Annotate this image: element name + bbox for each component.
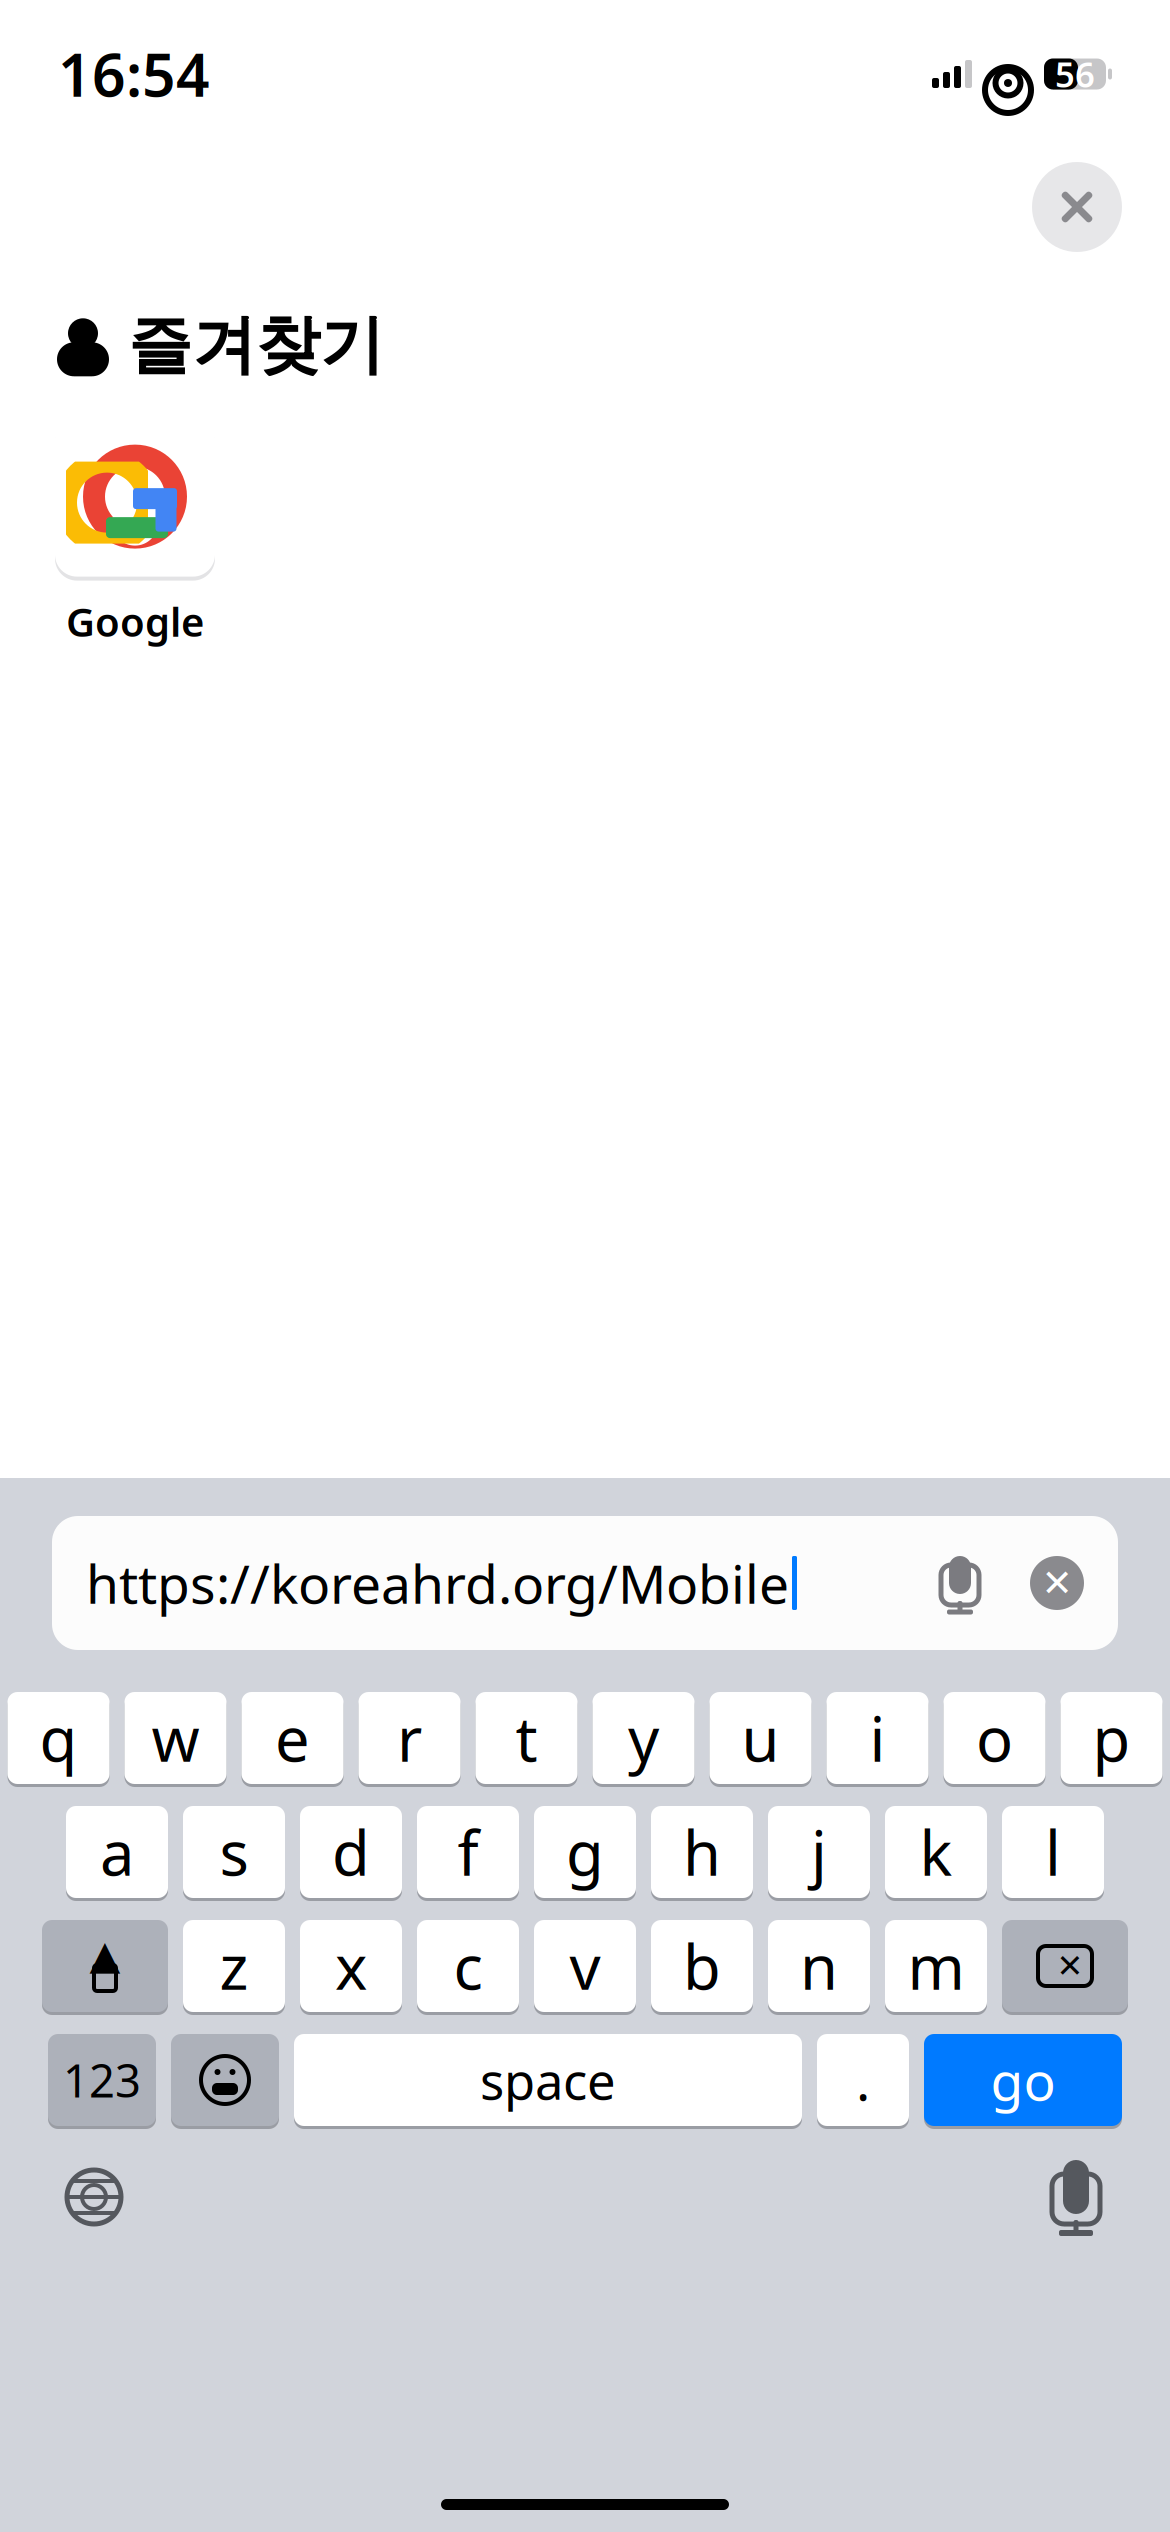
button[interactable]: z [183, 1920, 285, 2012]
staticText: s [219, 1811, 248, 1893]
button[interactable]: d [300, 1806, 402, 1898]
staticText: o [976, 1697, 1013, 1779]
button[interactable]: h [651, 1806, 753, 1898]
staticText: b [683, 1925, 721, 2007]
staticText: p [1092, 1697, 1130, 1779]
staticText: . [856, 2045, 870, 2115]
staticText: Google [66, 595, 204, 648]
staticText: d [332, 1811, 370, 1893]
button[interactable]: y [592, 1692, 694, 1784]
staticText: 123 [63, 2050, 141, 2110]
button[interactable]: b [651, 1920, 753, 2012]
staticText: v [569, 1925, 600, 2007]
staticText: space [480, 2046, 616, 2114]
staticText: h [683, 1811, 721, 1893]
staticText: 56 [1055, 51, 1095, 97]
staticText: go [990, 2045, 1055, 2115]
button[interactable]: u [709, 1692, 811, 1784]
button[interactable]: j [768, 1806, 870, 1898]
staticText: 즐겨찾기 [128, 306, 384, 385]
staticText: t [515, 1697, 537, 1779]
button[interactable]: w [124, 1692, 226, 1784]
staticText: a [100, 1811, 134, 1893]
button[interactable]: n [768, 1920, 870, 2012]
button[interactable]: x [300, 1920, 402, 2012]
button[interactable]: 123 [48, 2034, 156, 2126]
button[interactable]: https://koreahrd.org/Mobile [52, 1516, 1118, 1650]
staticText: g [566, 1811, 604, 1893]
staticText: ▲ [89, 1932, 120, 1978]
staticText: ✕ [1056, 1948, 1083, 1984]
button[interactable]: m [885, 1920, 987, 2012]
button[interactable]: go [924, 2034, 1122, 2126]
button[interactable]: l [1002, 1806, 1104, 1898]
button[interactable]: Dictation [1040, 2156, 1112, 2238]
staticText: c [453, 1925, 482, 2007]
button[interactable]: space [294, 2034, 802, 2126]
button[interactable]: Close [1032, 162, 1122, 252]
staticText: 16:54 [58, 35, 210, 113]
button[interactable]: i [826, 1692, 928, 1784]
staticText: j [811, 1811, 827, 1893]
button[interactable]: Emoji [171, 2034, 279, 2126]
staticText: y [628, 1697, 659, 1779]
staticText: m [907, 1925, 964, 2007]
staticText: f [457, 1811, 478, 1893]
staticText: i [869, 1697, 885, 1779]
button[interactable]: o [943, 1692, 1045, 1784]
button[interactable]: . [817, 2034, 909, 2126]
button[interactable]: Change keyboard [58, 2161, 130, 2233]
button[interactable]: t [475, 1692, 577, 1784]
staticText: https://koreahrd.org/Mobile [86, 1548, 789, 1618]
staticText: k [919, 1811, 952, 1893]
staticText: u [741, 1697, 779, 1779]
button[interactable]: p [1060, 1692, 1162, 1784]
staticText: q [39, 1697, 77, 1779]
button[interactable]: k [885, 1806, 987, 1898]
button[interactable]: s [183, 1806, 285, 1898]
staticText: r [397, 1697, 422, 1779]
staticText: z [219, 1925, 248, 2007]
staticText: l [1045, 1811, 1061, 1893]
staticText: ✕ [1041, 1562, 1072, 1604]
button[interactable]: a [66, 1806, 168, 1898]
staticText: e [275, 1697, 310, 1779]
staticText: x [335, 1925, 367, 2007]
button[interactable]: f [417, 1806, 519, 1898]
button[interactable]: v [534, 1920, 636, 2012]
button[interactable]: Delete [1002, 1920, 1128, 2012]
button[interactable]: c [417, 1920, 519, 2012]
button[interactable]: g [534, 1806, 636, 1898]
button[interactable]: Shift [42, 1920, 168, 2012]
staticText: n [800, 1925, 838, 2007]
button[interactable]: Google [40, 417, 230, 648]
button[interactable]: r [358, 1692, 460, 1784]
button[interactable]: q [7, 1692, 109, 1784]
button[interactable]: e [241, 1692, 343, 1784]
staticText: w [151, 1697, 199, 1779]
